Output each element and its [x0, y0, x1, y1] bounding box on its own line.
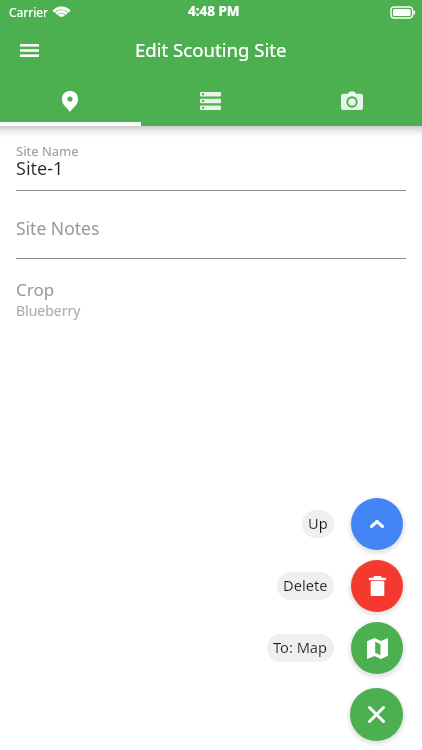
- staticText: 4:48 PM: [188, 2, 240, 20]
- staticText: Site Name: [16, 142, 79, 160]
- staticText: Site-1: [16, 156, 64, 181]
- button[interactable]: Delete: [351, 560, 403, 612]
- staticText: To: Map: [273, 637, 328, 657]
- staticText: Up: [308, 513, 328, 533]
- staticText: Edit Scouting Site: [135, 37, 287, 62]
- button[interactable]: Close: [350, 688, 403, 741]
- staticText: Blueberry: [16, 301, 81, 320]
- button[interactable]: Up: [302, 510, 334, 538]
- staticText: Site Notes: [16, 216, 100, 240]
- staticText: Carrier: [9, 4, 49, 20]
- button[interactable]: List: [140, 76, 281, 126]
- button[interactable]: To: Map: [267, 634, 334, 662]
- button[interactable]: Scroll up: [351, 498, 403, 550]
- staticText: Crop: [16, 278, 55, 301]
- button[interactable]: Menu: [9, 30, 49, 70]
- button[interactable]: Location: [0, 76, 140, 126]
- button[interactable]: To Map: [351, 622, 403, 674]
- button[interactable]: Camera: [281, 76, 422, 126]
- button[interactable]: Delete: [277, 572, 334, 600]
- staticText: Delete: [283, 575, 328, 595]
